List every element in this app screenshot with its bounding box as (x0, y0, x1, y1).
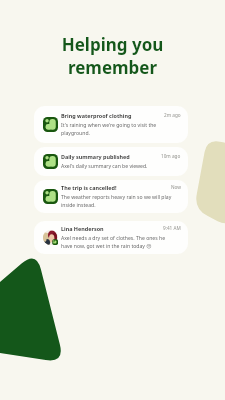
staticText: 10m ago (161, 153, 181, 159)
button[interactable]: Lina Henderson (34, 221, 188, 254)
staticText: 2m ago (164, 112, 181, 118)
staticText: Now (171, 184, 181, 190)
staticText: Daily summary published (61, 153, 130, 160)
staticText: Helping you remember (0, 33, 225, 79)
staticText: It's raining when we're going to visit t… (61, 122, 157, 137)
staticText: Axel needs a dry set of clothes. The one… (61, 235, 166, 250)
staticText: Lina Henderson (61, 225, 104, 232)
staticText: The trip is cancelled! (61, 184, 117, 191)
staticText: 9:41 AM (163, 225, 181, 231)
staticText: The weather reports heavy rain so we wil… (61, 194, 172, 209)
button[interactable]: Bring waterproof clothing (34, 106, 188, 143)
staticText: Bring waterproof clothing (61, 112, 132, 119)
staticText: Axel's daily summary can be viewed. (61, 163, 148, 170)
button[interactable]: Daily summary published (34, 147, 188, 176)
button[interactable]: The trip is cancelled! (34, 180, 188, 213)
